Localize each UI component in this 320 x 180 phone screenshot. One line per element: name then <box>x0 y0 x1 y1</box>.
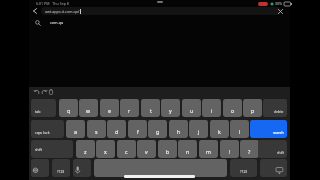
button[interactable]: shift <box>31 140 73 158</box>
staticText: q <box>67 107 71 114</box>
staticText: caps lock <box>35 130 50 135</box>
button[interactable]: caps lock <box>31 120 64 138</box>
staticText: r <box>128 107 131 114</box>
staticText: u <box>190 107 194 114</box>
staticText: g <box>156 128 160 135</box>
button[interactable]: Clipboard <box>47 88 55 96</box>
button[interactable]: o <box>223 99 242 117</box>
button[interactable]: Redo <box>40 88 48 96</box>
staticText: 6:01 PM Thu Sep 8 <box>36 1 69 6</box>
staticText: tab <box>35 109 41 114</box>
button[interactable]: n <box>178 140 197 158</box>
staticText: h <box>177 128 181 135</box>
staticText: o <box>231 107 235 114</box>
staticText: j <box>198 128 200 135</box>
button[interactable]: b <box>158 140 177 158</box>
staticText: ?123 <box>57 169 65 174</box>
staticText: v <box>145 148 148 155</box>
button[interactable]: j <box>189 120 208 138</box>
staticText: search <box>273 130 284 135</box>
staticText: b <box>166 148 170 155</box>
button[interactable]: shift <box>258 140 287 158</box>
button[interactable]: g <box>148 120 167 138</box>
button[interactable]: e <box>100 99 119 117</box>
staticText: n <box>186 148 190 155</box>
button[interactable]: ?123 <box>52 159 70 177</box>
button[interactable]: u <box>182 99 201 117</box>
button[interactable]: p <box>243 99 262 117</box>
button[interactable]: Clear <box>276 7 285 16</box>
button[interactable]: Voice input <box>73 159 91 177</box>
staticText: s <box>95 128 98 135</box>
button[interactable]: ?123 <box>230 159 257 177</box>
button[interactable]: q <box>59 99 78 117</box>
button[interactable]: t <box>141 99 160 117</box>
staticText: d <box>115 128 119 135</box>
staticText: i <box>211 107 213 114</box>
staticText: 30% <box>275 1 283 6</box>
button[interactable]: a <box>66 120 85 138</box>
staticText: ?123 <box>240 169 248 174</box>
button[interactable]: search <box>250 120 287 138</box>
button[interactable]: i <box>202 99 221 117</box>
staticText: c <box>125 148 128 155</box>
staticText: e <box>108 107 111 114</box>
button[interactable]: Undo <box>33 88 41 96</box>
button[interactable]: m <box>199 140 218 158</box>
button[interactable]: x <box>96 140 115 158</box>
button[interactable]: h <box>169 120 188 138</box>
button[interactable]: delete <box>263 99 287 117</box>
button[interactable]: z <box>76 140 95 158</box>
staticText: z <box>84 148 87 155</box>
staticText: a <box>74 128 77 135</box>
staticText: t <box>150 107 152 114</box>
button[interactable]: c <box>117 140 136 158</box>
staticText: delete <box>274 110 284 114</box>
button[interactable]: v <box>137 140 156 158</box>
button[interactable]: com.qa <box>29 18 290 27</box>
button[interactable]: ? <box>240 140 259 158</box>
button[interactable]: Hide keyboard <box>260 159 287 177</box>
button[interactable]: l <box>230 120 249 138</box>
staticText: ! <box>229 148 231 155</box>
button[interactable]: Change keyboard <box>31 159 49 177</box>
staticText: com.qa <box>50 20 64 25</box>
button[interactable]: f <box>128 120 147 138</box>
staticText: x <box>104 148 107 155</box>
staticText: w <box>86 107 91 114</box>
staticText: ? <box>248 148 251 155</box>
button[interactable]: ! <box>220 140 239 158</box>
button[interactable]: k <box>210 120 229 138</box>
button[interactable]: awt.apps-it.com.qa/ <box>41 7 281 15</box>
staticText: shift <box>35 147 42 152</box>
staticText: k <box>218 128 221 135</box>
staticText: y <box>169 107 172 114</box>
button[interactable] <box>94 159 227 177</box>
button[interactable]: tab <box>31 99 56 117</box>
button[interactable]: y <box>161 99 180 117</box>
staticText: f <box>137 128 139 135</box>
button[interactable]: w <box>79 99 98 117</box>
staticText: p <box>251 107 255 114</box>
staticText: awt.apps-it.com.qa/ <box>45 9 80 14</box>
staticText: shift <box>277 150 284 155</box>
button[interactable]: Back <box>31 7 39 15</box>
button[interactable]: d <box>107 120 126 138</box>
staticText: l <box>239 128 241 135</box>
button[interactable]: s <box>87 120 106 138</box>
button[interactable]: r <box>120 99 139 117</box>
staticText: m <box>206 148 211 155</box>
